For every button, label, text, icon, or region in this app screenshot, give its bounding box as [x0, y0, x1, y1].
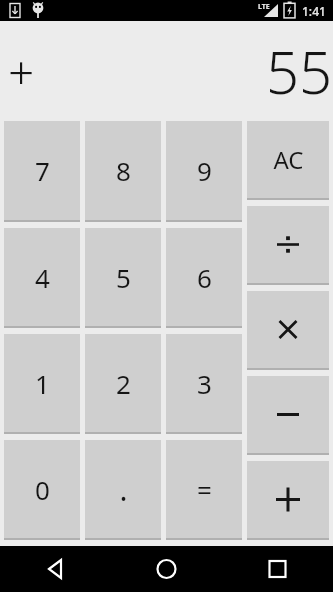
staticText: 1: [35, 366, 50, 401]
staticText: 5: [116, 260, 131, 295]
button[interactable]: Subtract: [247, 376, 329, 455]
button[interactable]: Divide: [247, 206, 329, 285]
staticText: =: [197, 472, 212, 507]
staticText: 55: [266, 32, 333, 111]
staticText: +: [8, 40, 35, 103]
button[interactable]: Recent apps: [222, 546, 333, 592]
staticText: AC: [273, 143, 304, 176]
staticText: 1:41: [302, 3, 326, 19]
button[interactable]: 7: [4, 121, 80, 222]
button[interactable]: .: [85, 440, 161, 540]
button[interactable]: 8: [85, 121, 161, 222]
button[interactable]: Multiply: [247, 291, 329, 370]
staticText: .: [119, 469, 128, 510]
staticText: 7: [35, 153, 50, 188]
button[interactable]: 9: [166, 121, 242, 222]
button[interactable]: 6: [166, 228, 242, 328]
button[interactable]: 0: [4, 440, 80, 540]
button[interactable]: 1: [4, 334, 80, 434]
staticText: 3: [197, 366, 212, 401]
staticText: 6: [197, 260, 212, 295]
button[interactable]: 3: [166, 334, 242, 434]
button[interactable]: Home: [111, 546, 222, 592]
button[interactable]: 4: [4, 228, 80, 328]
button[interactable]: 5: [85, 228, 161, 328]
staticText: 0: [35, 472, 50, 507]
staticText: 2: [116, 366, 131, 401]
button[interactable]: Add: [247, 461, 329, 540]
button[interactable]: Back: [0, 546, 111, 592]
button[interactable]: 2: [85, 334, 161, 434]
button[interactable]: AC: [247, 121, 329, 200]
button[interactable]: =: [166, 440, 242, 540]
staticText: LTE: [258, 2, 270, 12]
staticText: 4: [35, 260, 50, 295]
staticText: 8: [116, 153, 131, 188]
staticText: 9: [197, 153, 212, 188]
